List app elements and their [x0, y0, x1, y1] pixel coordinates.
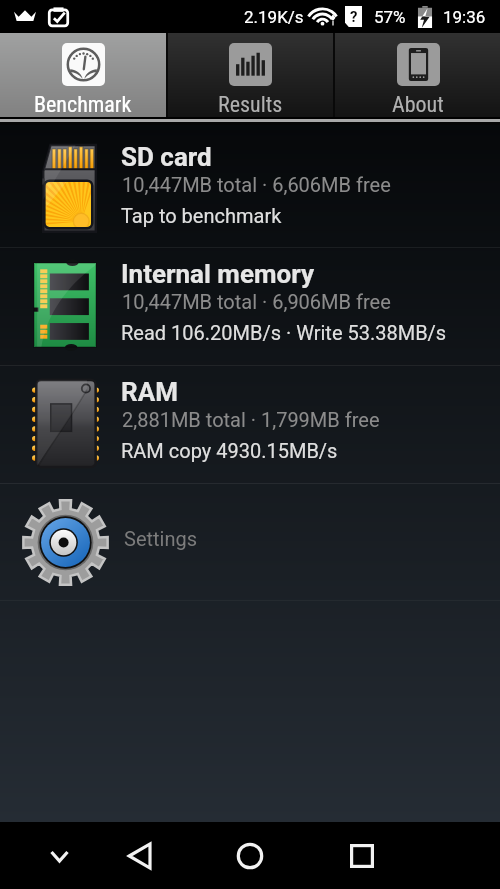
staticText: Tap to benchmark: [121, 204, 282, 227]
button[interactable]: SD card: [0, 131, 500, 253]
staticText: 2.19K/s: [244, 7, 304, 27]
staticText: RAM copy 4930.15MB/s: [121, 439, 338, 462]
button[interactable]: Results: [168, 33, 333, 117]
staticText: 10,447MB total · 6,606MB free: [122, 173, 391, 196]
button[interactable]: Internal memory: [0, 248, 500, 366]
staticText: Benchmark: [34, 92, 132, 117]
staticText: 10,447MB total · 6,906MB free: [122, 290, 391, 313]
button[interactable]: RAM: [0, 366, 500, 484]
button[interactable]: Benchmark: [0, 33, 166, 117]
staticText: Results: [218, 92, 283, 117]
staticText: Settings: [124, 527, 198, 550]
button[interactable]: About: [335, 33, 500, 117]
button[interactable]: Settings: [0, 484, 500, 600]
staticText: Internal memory: [121, 259, 314, 289]
staticText: About: [392, 92, 444, 117]
button[interactable]: Hide keyboard: [36, 822, 82, 889]
staticText: 2,881MB total · 1,799MB free: [122, 408, 380, 431]
staticText: 19:36: [443, 7, 486, 27]
button[interactable]: Back: [116, 822, 162, 889]
staticText: ?: [350, 8, 358, 26]
staticText: 57%: [374, 7, 406, 27]
staticText: SD card: [121, 142, 212, 172]
button[interactable]: Recents: [339, 822, 385, 889]
button[interactable]: Home: [227, 822, 273, 889]
staticText: Read 106.20MB/s · Write 53.38MB/s: [121, 321, 447, 344]
staticText: RAM: [121, 377, 178, 407]
